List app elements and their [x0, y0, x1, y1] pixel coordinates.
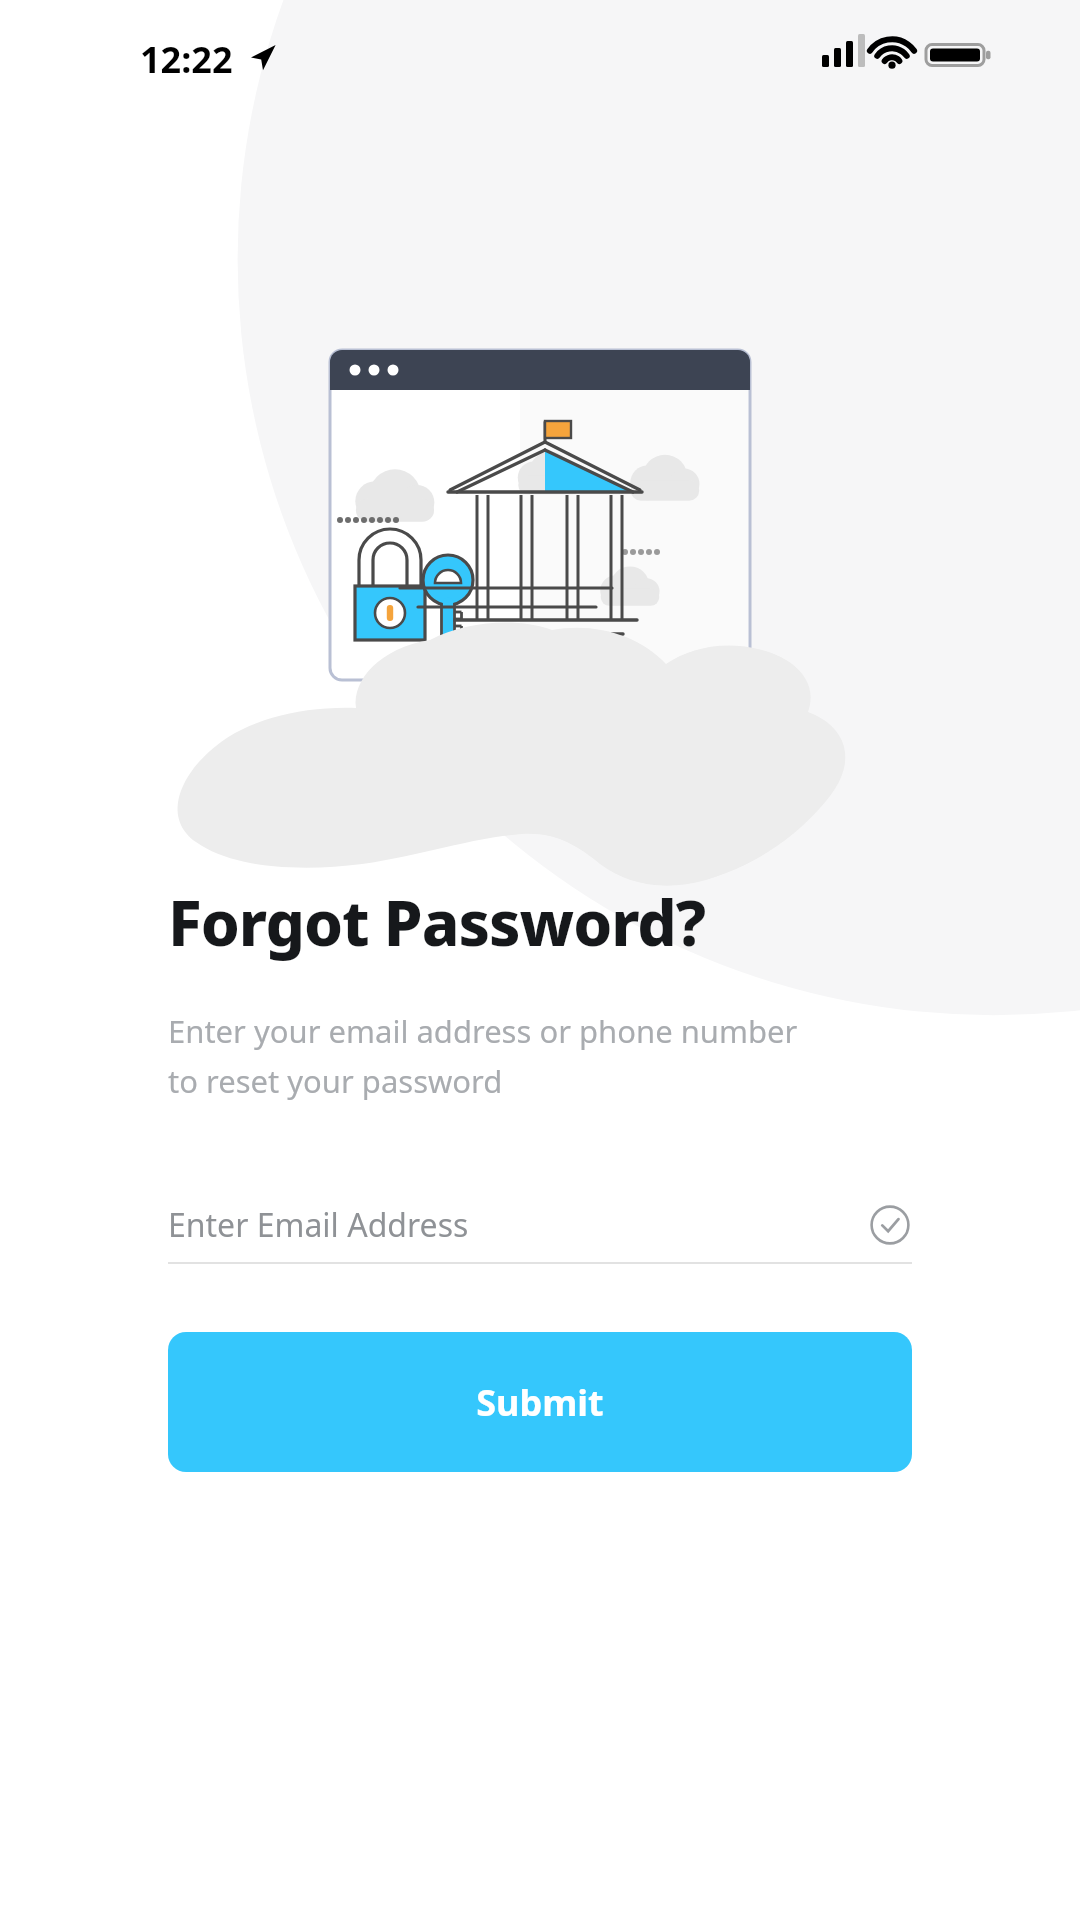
staticText: Enter your email address or phone number… [168, 1010, 798, 1102]
staticText: Submit [476, 1378, 604, 1427]
staticText: 12:22 [140, 35, 233, 84]
button[interactable]: Submit [168, 1332, 912, 1472]
staticText: Forgot Password? [168, 880, 706, 964]
staticText: Enter Email Address [168, 1203, 868, 1247]
button[interactable]: Enter Email Address [168, 1188, 912, 1264]
button[interactable]: Valid [868, 1203, 912, 1247]
